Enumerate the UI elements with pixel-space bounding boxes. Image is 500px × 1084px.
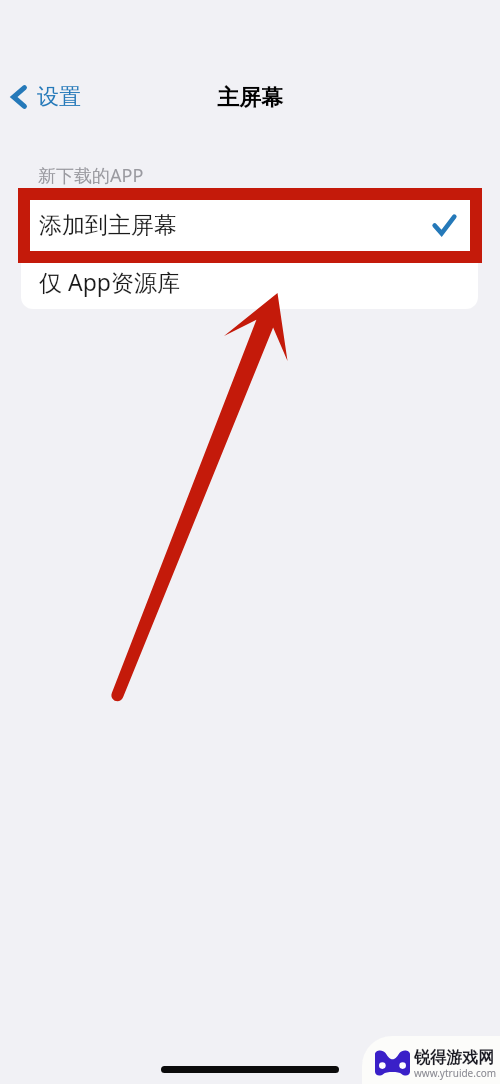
staticText: 仅 App资源库 (39, 266, 180, 297)
staticText: www.ytruide.com (414, 1066, 497, 1080)
staticText: 添加到主屏幕 (39, 211, 177, 240)
staticText: 锐得游戏网 (414, 1048, 494, 1068)
button[interactable]: Back (7, 77, 85, 117)
staticText: 设置 (37, 83, 81, 111)
staticText: 主屏幕 (217, 84, 283, 112)
button[interactable]: 仅 App资源库 (21, 253, 478, 309)
button[interactable]: 添加到主屏幕 (21, 197, 478, 253)
other: Back (11, 86, 27, 108)
other: Selected (432, 214, 456, 236)
staticText: 新下载的APP (38, 163, 144, 188)
other: Logo (375, 1050, 410, 1076)
